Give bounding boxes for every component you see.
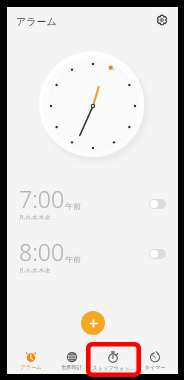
staticText: タイマー — [144, 364, 166, 371]
button[interactable]: 世界時計 — [51, 344, 92, 377]
staticText: 月,火,水,木,金 — [19, 213, 51, 220]
staticText: 世界時計 — [61, 364, 82, 371]
staticText: 8:00 — [19, 236, 65, 267]
button[interactable]: Toggle alarm — [149, 249, 166, 259]
button[interactable]: Toggle alarm — [149, 199, 166, 209]
staticText: 7:00 — [19, 183, 65, 214]
button[interactable]: タイマー — [134, 344, 176, 377]
button[interactable]: Add alarm — [81, 311, 105, 335]
staticText: 午前 — [65, 254, 81, 264]
button[interactable]: アラーム — [10, 344, 51, 377]
staticText: アラーム — [20, 364, 42, 371]
button[interactable]: 7:00 — [7, 185, 178, 229]
staticText: アラーム — [16, 15, 57, 28]
staticText: 月,火,水,木,金 — [19, 266, 51, 273]
staticText: 午前 — [65, 201, 81, 211]
staticText: ストップウォッ… — [92, 364, 134, 371]
button[interactable]: 8:00 — [7, 238, 178, 282]
button[interactable]: Settings — [151, 9, 173, 31]
button[interactable]: ストップウォッ… — [92, 344, 134, 377]
